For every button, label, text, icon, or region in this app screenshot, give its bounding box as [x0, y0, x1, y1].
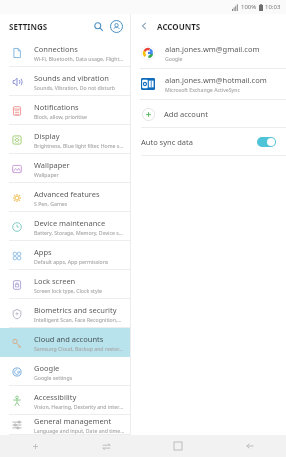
staticText: Google	[165, 55, 183, 62]
button[interactable]: General management	[0, 415, 130, 435]
button[interactable]: Connections	[0, 38, 130, 67]
staticText: Apps	[34, 247, 52, 257]
staticText: Notifications	[34, 102, 79, 112]
staticText: ACCOUNTS	[157, 21, 201, 32]
button[interactable]: Add	[0, 435, 71, 457]
staticText: Google	[34, 363, 60, 373]
staticText: Sounds and vibration	[34, 73, 109, 83]
staticText: Device maintenance	[34, 218, 106, 228]
button[interactable]: Lock screen	[0, 270, 130, 299]
staticText: Language and input, Date and time,...	[34, 427, 125, 434]
staticText: Sounds, Vibration, Do not disturb	[34, 84, 115, 91]
staticText: Default apps, App permissions	[34, 258, 109, 265]
button[interactable]: Biometrics and security	[0, 299, 130, 328]
staticText: Microsoft Exchange ActiveSync	[165, 86, 240, 93]
staticText: Samsung Cloud, Backup and restor...	[34, 345, 123, 352]
staticText: Accessibility	[34, 392, 77, 402]
button[interactable]: alan.jones.wm@hotmail.com	[131, 69, 286, 99]
button[interactable]: Wallpaper	[0, 154, 130, 183]
staticText: Wallpaper	[34, 171, 59, 178]
button[interactable]: Home	[142, 435, 214, 457]
staticText: Auto sync data	[141, 137, 257, 147]
button[interactable]: Display	[0, 125, 130, 154]
staticText: Intelligent Scan, Face Recognition,...	[34, 316, 122, 323]
staticText: alan.jones.wm@gmail.com	[165, 44, 260, 54]
button[interactable]: Advanced features	[0, 183, 130, 212]
staticText: Vision, Hearing, Dexterity and intera...	[34, 403, 125, 410]
staticText: Add account	[164, 109, 208, 119]
staticText: Wallpaper	[34, 160, 70, 170]
button[interactable]: alan.jones.wm@gmail.com	[131, 38, 286, 68]
staticText: alan.jones.wm@hotmail.com	[165, 75, 267, 85]
staticText: Google settings	[34, 374, 73, 381]
staticText: Connections	[34, 44, 78, 54]
button[interactable]: Notifications	[0, 96, 130, 125]
button[interactable]: Google	[0, 357, 130, 386]
staticText: Screen lock type, Clock style	[34, 287, 102, 294]
staticText: Display	[34, 131, 60, 141]
staticText: Lock screen	[34, 276, 76, 286]
staticText: General management	[34, 416, 112, 426]
button[interactable]: Add account	[131, 100, 286, 127]
staticText: 10:03	[265, 3, 281, 11]
button[interactable]: Apps	[0, 241, 130, 270]
staticText: 100%	[241, 3, 257, 11]
staticText: Block, allow, prioritise	[34, 113, 87, 120]
button[interactable]: Sounds and vibration	[0, 67, 130, 96]
staticText: Advanced features	[34, 189, 100, 199]
button[interactable]: Auto sync data	[131, 128, 286, 155]
staticText: Brightness, Blue light filter, Home sc..…	[34, 142, 125, 149]
button[interactable]: Back	[135, 17, 153, 35]
staticText: Biometrics and security	[34, 305, 117, 315]
staticText: Wi-Fi, Bluetooth, Data usage, Flight...	[34, 55, 124, 62]
button[interactable]: Accessibility	[0, 386, 130, 415]
staticText: Battery, Storage, Memory, Device se...	[34, 229, 125, 236]
staticText: SETTINGS	[9, 21, 48, 32]
button[interactable]: Account	[107, 17, 125, 35]
button[interactable]: Back	[214, 435, 286, 457]
button[interactable]: Device maintenance	[0, 212, 130, 241]
button[interactable]: Cloud and accounts	[0, 328, 130, 357]
button[interactable]: Search	[89, 17, 107, 35]
button[interactable]: Recents	[71, 435, 142, 457]
staticText: Cloud and accounts	[34, 334, 104, 344]
staticText: S Pen, Games	[34, 200, 68, 207]
